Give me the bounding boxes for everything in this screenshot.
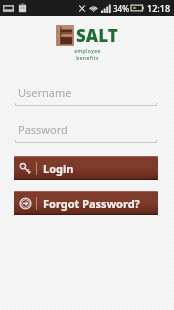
button[interactable]: Forgot Password [14, 191, 158, 215]
button[interactable]: Username [0, 85, 174, 108]
staticText: SALT [76, 24, 118, 47]
staticText: 12:18 [147, 2, 171, 14]
staticText: Password [18, 122, 68, 137]
button[interactable]: Password [0, 122, 174, 145]
staticText: Forgot Password? [43, 196, 140, 211]
staticText: Username [18, 85, 72, 100]
staticText: 34% [113, 3, 129, 14]
staticText: employee benefits [74, 48, 101, 61]
staticText: Login [43, 161, 74, 176]
button[interactable]: Login [14, 156, 158, 180]
